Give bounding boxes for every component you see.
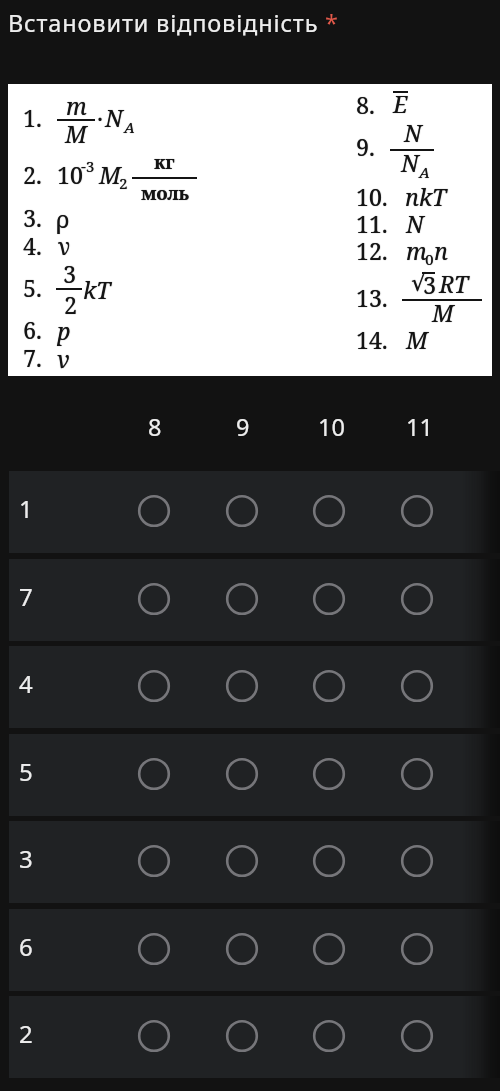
staticText: N bbox=[404, 117, 422, 148]
button[interactable]: Option 11 for row 3 bbox=[396, 840, 438, 882]
staticText: 2 bbox=[19, 1017, 33, 1050]
button[interactable]: Option 8 for row 6 bbox=[133, 928, 175, 970]
staticText: 10 bbox=[318, 411, 345, 443]
staticText: 4 bbox=[19, 667, 33, 700]
staticText: 3 bbox=[19, 842, 33, 875]
staticText: ν bbox=[58, 230, 71, 261]
button[interactable]: Option 11 for row 4 bbox=[396, 665, 438, 707]
staticText: n bbox=[434, 235, 448, 266]
button[interactable]: Option 8 for row 1 bbox=[133, 490, 175, 532]
button[interactable]: 7 bbox=[9, 559, 500, 641]
button[interactable]: Option 8 for row 2 bbox=[133, 1015, 175, 1057]
staticText: 6. bbox=[23, 314, 42, 345]
button[interactable]: Option 10 for row 4 bbox=[308, 665, 350, 707]
staticText: p bbox=[57, 315, 71, 346]
staticText: kT bbox=[83, 274, 111, 305]
staticText: 7. bbox=[23, 342, 42, 373]
button[interactable]: Option 9 for row 3 bbox=[221, 840, 263, 882]
button[interactable]: Option 8 for row 5 bbox=[133, 753, 175, 795]
staticText: √ bbox=[411, 270, 426, 297]
button[interactable]: Option 8 for row 4 bbox=[133, 665, 175, 707]
staticText: 1 bbox=[19, 492, 33, 525]
staticText: N bbox=[105, 102, 123, 133]
button[interactable]: Option 10 for row 3 bbox=[308, 840, 350, 882]
staticText: кг bbox=[154, 150, 175, 175]
button[interactable]: Option 10 for row 7 bbox=[308, 578, 350, 620]
button[interactable]: 4 bbox=[9, 646, 500, 728]
staticText: ρ bbox=[56, 203, 70, 234]
staticText: 10. bbox=[356, 181, 388, 212]
staticText: N bbox=[406, 208, 424, 239]
staticText: M bbox=[406, 324, 428, 355]
button[interactable]: Option 9 for row 2 bbox=[221, 1015, 263, 1057]
staticText: 9 bbox=[236, 411, 250, 443]
staticText: M bbox=[65, 118, 87, 149]
button[interactable]: Option 10 for row 1 bbox=[308, 490, 350, 532]
staticText: 8 bbox=[148, 411, 162, 443]
staticText: * bbox=[325, 7, 338, 39]
staticText: 2 bbox=[119, 173, 128, 193]
staticText: m bbox=[66, 90, 87, 121]
staticText: 5. bbox=[23, 272, 42, 303]
button[interactable]: 6 bbox=[9, 909, 500, 991]
button[interactable]: Option 10 for row 5 bbox=[308, 753, 350, 795]
staticText: E bbox=[393, 88, 408, 119]
staticText: 10 bbox=[57, 159, 83, 190]
staticText: RT bbox=[439, 268, 468, 299]
button[interactable]: Option 11 for row 6 bbox=[396, 928, 438, 970]
button[interactable]: 5 bbox=[9, 734, 500, 816]
staticText: 4. bbox=[23, 230, 42, 261]
button[interactable]: Option 9 for row 4 bbox=[221, 665, 263, 707]
staticText: · bbox=[97, 103, 103, 134]
button[interactable]: Option 10 for row 2 bbox=[308, 1015, 350, 1057]
button[interactable]: Option 9 for row 6 bbox=[221, 928, 263, 970]
staticText: 11. bbox=[356, 208, 388, 239]
staticText: 13. bbox=[356, 282, 388, 313]
staticText: 5 bbox=[19, 755, 33, 788]
button[interactable]: 1 bbox=[9, 471, 500, 553]
staticText: v bbox=[57, 343, 70, 374]
staticText: Встановити відповідність bbox=[8, 7, 319, 39]
staticText: M bbox=[99, 159, 121, 190]
button[interactable]: Option 8 for row 3 bbox=[133, 840, 175, 882]
staticText: nkT bbox=[405, 181, 446, 212]
staticText: m bbox=[406, 235, 427, 266]
staticText: A bbox=[419, 162, 430, 182]
button[interactable]: Option 11 for row 1 bbox=[396, 490, 438, 532]
staticText: -3 bbox=[81, 156, 95, 176]
button[interactable]: Option 9 for row 1 bbox=[221, 490, 263, 532]
staticText: 8. bbox=[356, 89, 375, 120]
staticText: A bbox=[124, 117, 135, 137]
staticText: M bbox=[432, 297, 454, 328]
staticText: 3 bbox=[423, 269, 436, 300]
staticText: 14. bbox=[356, 324, 388, 355]
staticText: N bbox=[401, 147, 419, 178]
staticText: 9. bbox=[356, 131, 375, 162]
staticText: 11 bbox=[406, 411, 433, 443]
staticText: моль bbox=[141, 181, 189, 206]
button[interactable]: Option 10 for row 6 bbox=[308, 928, 350, 970]
button[interactable]: Option 11 for row 2 bbox=[396, 1015, 438, 1057]
button[interactable]: Option 9 for row 5 bbox=[221, 753, 263, 795]
button[interactable]: Option 11 for row 7 bbox=[396, 578, 438, 620]
button[interactable]: Option 11 for row 5 bbox=[396, 753, 438, 795]
staticText: 3 bbox=[63, 258, 76, 289]
staticText: 0 bbox=[425, 249, 434, 269]
button[interactable]: Option 9 for row 7 bbox=[221, 578, 263, 620]
staticText: 12. bbox=[356, 235, 388, 266]
button[interactable]: Option 8 for row 7 bbox=[133, 578, 175, 620]
staticText: 2. bbox=[23, 159, 42, 190]
button[interactable]: 2 bbox=[9, 996, 500, 1078]
staticText: 3. bbox=[23, 202, 42, 233]
staticText: 2 bbox=[64, 289, 77, 320]
staticText: 1. bbox=[23, 102, 42, 133]
button[interactable]: 3 bbox=[9, 821, 500, 903]
staticText: 7 bbox=[19, 580, 33, 613]
staticText: 6 bbox=[19, 930, 33, 963]
